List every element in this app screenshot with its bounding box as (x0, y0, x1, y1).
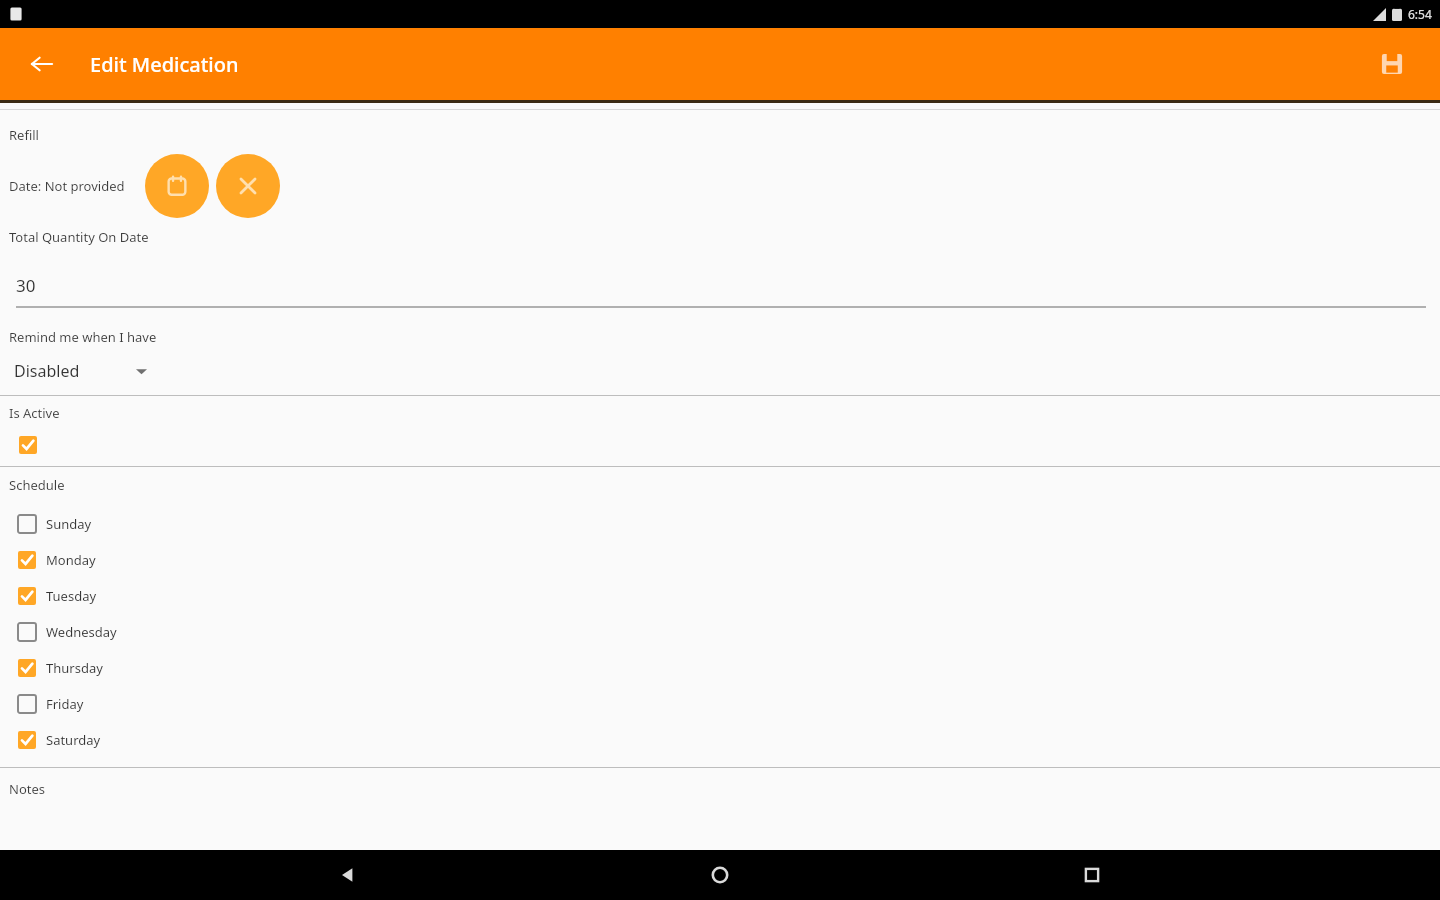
staticText: Notes (9, 780, 45, 798)
button[interactable]: Home (696, 851, 744, 899)
button[interactable]: Saturday (0, 722, 1440, 758)
staticText: Is Active (9, 404, 60, 422)
staticText: Disabled (14, 360, 80, 382)
staticText: Tuesday (46, 587, 97, 605)
button[interactable]: Pick date (145, 154, 209, 218)
staticText: Thursday (46, 659, 103, 677)
button[interactable]: Tuesday (0, 578, 1440, 614)
staticText: Refill (9, 126, 39, 144)
button[interactable]: Disabled (0, 356, 1440, 386)
button[interactable]: Thursday (0, 650, 1440, 686)
staticText: Schedule (9, 476, 65, 494)
button[interactable]: Sunday (0, 506, 1440, 542)
staticText: Remind me when I have (9, 328, 157, 346)
staticText: Saturday (46, 731, 101, 749)
staticText: Monday (46, 551, 96, 569)
button[interactable]: Back (324, 851, 372, 899)
staticText: Friday (46, 695, 84, 713)
staticText: Sunday (46, 515, 92, 533)
button[interactable]: Recents (1068, 851, 1116, 899)
staticText: 30 (16, 274, 36, 297)
button[interactable]: Save (1370, 42, 1414, 86)
staticText: 6:54 (1408, 6, 1432, 22)
staticText: Date: Not provided (9, 177, 125, 195)
staticText: Total Quantity On Date (9, 228, 149, 246)
button[interactable]: Monday (0, 542, 1440, 578)
button[interactable]: Clear date (216, 154, 280, 218)
button[interactable]: Friday (0, 686, 1440, 722)
button[interactable]: Back (22, 44, 62, 84)
staticText: Wednesday (46, 623, 117, 641)
button[interactable]: Wednesday (0, 614, 1440, 650)
button[interactable]: Is Active checkbox (17, 434, 39, 456)
staticText: Edit Medication (90, 51, 239, 78)
